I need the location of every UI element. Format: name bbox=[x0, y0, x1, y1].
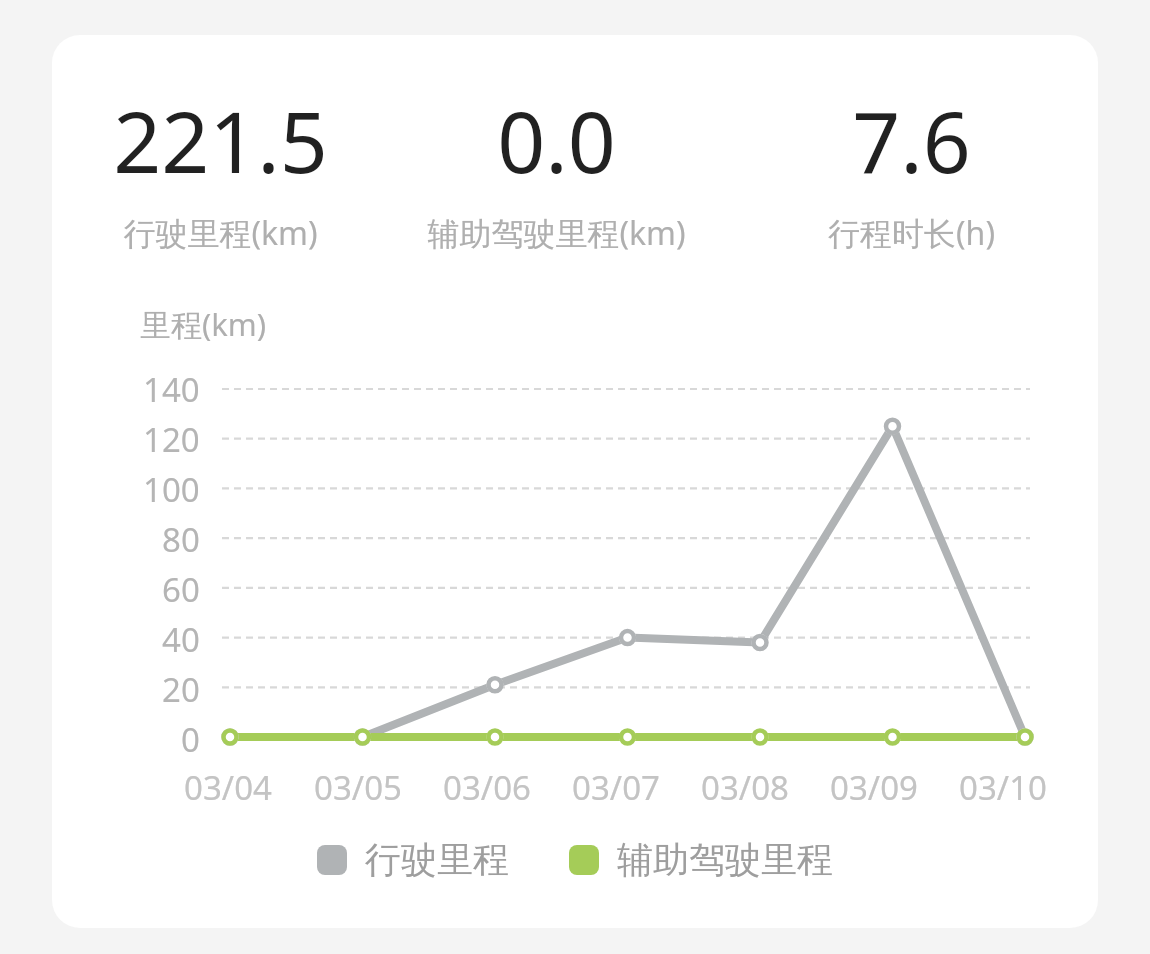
button[interactable]: 0.0 bbox=[388, 83, 724, 255]
staticText: 03/09 bbox=[830, 765, 918, 810]
button[interactable]: 221.5 bbox=[52, 83, 388, 255]
staticText: 80 bbox=[162, 517, 200, 562]
staticText: 20 bbox=[162, 667, 200, 712]
staticText: 行驶里程 bbox=[365, 837, 509, 882]
staticText: 100 bbox=[143, 467, 200, 512]
button[interactable]: 行驶里程 bbox=[317, 837, 509, 882]
staticText: 03/10 bbox=[959, 765, 1047, 810]
staticText: 辅助驾驶里程(km) bbox=[427, 211, 686, 255]
staticText: 140 bbox=[143, 367, 200, 412]
button[interactable]: 辅助驾驶里程 bbox=[569, 837, 833, 882]
staticText: 0 bbox=[181, 717, 200, 757]
staticText: 120 bbox=[143, 417, 200, 462]
staticText: 03/04 bbox=[184, 765, 272, 810]
staticText: 03/06 bbox=[443, 765, 531, 810]
staticText: 行程时长(h) bbox=[828, 211, 995, 255]
staticText: 03/07 bbox=[572, 765, 660, 810]
staticText: 行驶里程(km) bbox=[123, 211, 318, 255]
staticText: 里程(km) bbox=[140, 303, 267, 345]
staticText: 03/08 bbox=[701, 765, 789, 810]
staticText: 辅助驾驶里程 bbox=[617, 837, 833, 882]
staticText: 7.6 bbox=[852, 83, 971, 197]
staticText: 40 bbox=[162, 617, 200, 662]
staticText: 03/05 bbox=[314, 765, 402, 810]
staticText: 0.0 bbox=[497, 83, 616, 197]
button[interactable]: 7.6 bbox=[724, 83, 1098, 255]
staticText: 221.5 bbox=[113, 83, 328, 197]
staticText: 60 bbox=[162, 567, 200, 612]
